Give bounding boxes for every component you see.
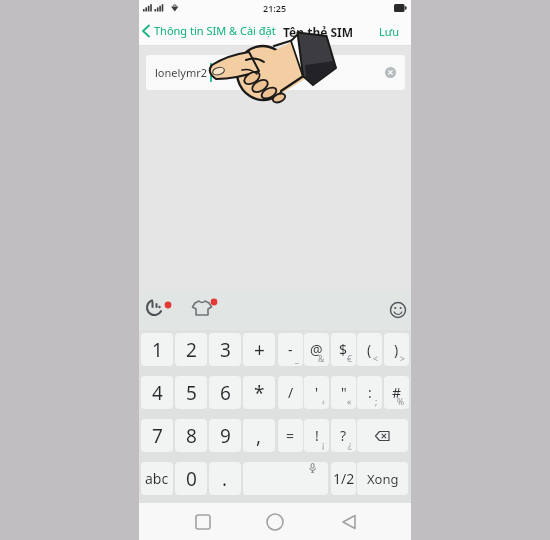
staticText: Lưu: [379, 24, 399, 39]
button[interactable]: ": [331, 376, 356, 409]
staticText: 1/2: [333, 469, 355, 488]
staticText: &: [318, 353, 325, 365]
staticText: 8: [186, 423, 197, 449]
button[interactable]: 3: [209, 333, 241, 366]
staticText: 3: [220, 337, 231, 363]
staticText: -: [288, 340, 293, 359]
button[interactable]: [187, 506, 219, 538]
button[interactable]: .: [209, 462, 241, 495]
staticText: !: [315, 426, 319, 445]
staticText: ¿: [348, 439, 352, 451]
staticText: 21:25: [263, 2, 287, 14]
staticText: 7: [152, 423, 163, 449]
button[interactable]: ,: [243, 419, 275, 452]
button[interactable]: @: [304, 333, 329, 366]
staticText: _: [295, 353, 299, 365]
staticText: <: [373, 353, 378, 365]
button[interactable]: =: [278, 419, 303, 452]
button[interactable]: #: [384, 376, 409, 409]
staticText: :: [368, 383, 372, 402]
staticText: Thông tin SIM & Cài đặt: [154, 23, 276, 38]
button[interactable]: ?: [331, 419, 356, 452]
staticText: +: [254, 337, 265, 363]
button[interactable]: :: [357, 376, 382, 409]
button[interactable]: Lưu: [373, 20, 405, 42]
button[interactable]: *: [243, 376, 275, 409]
staticText: ): [394, 340, 399, 359]
button[interactable]: 2: [175, 333, 207, 366]
button[interactable]: 9: [209, 419, 241, 452]
button[interactable]: 1: [141, 333, 173, 366]
staticText: 2: [186, 337, 197, 363]
button[interactable]: 0: [175, 462, 207, 495]
staticText: lonelymr2: [155, 65, 208, 80]
staticText: 5: [186, 380, 197, 406]
staticText: #: [392, 383, 402, 402]
staticText: Tên thẻ SIM: [283, 24, 354, 40]
staticText: 0: [186, 466, 197, 492]
button[interactable]: 8: [175, 419, 207, 452]
button[interactable]: [259, 506, 291, 538]
button[interactable]: 7: [141, 419, 173, 452]
staticText: ': [315, 383, 319, 402]
staticText: 9: [220, 423, 231, 449]
staticText: Xong: [367, 470, 399, 488]
staticText: 4: [152, 380, 163, 406]
staticText: *: [254, 380, 265, 406]
staticText: abc: [145, 469, 169, 488]
staticText: @: [310, 340, 323, 359]
staticText: «: [347, 396, 352, 408]
button[interactable]: (: [357, 333, 382, 366]
staticText: /: [288, 383, 294, 402]
button[interactable]: Thông tin SIM & Cài đặt: [141, 18, 275, 43]
button[interactable]: 4: [141, 376, 173, 409]
button[interactable]: lonelymr2: [146, 55, 405, 90]
button[interactable]: ): [384, 333, 409, 366]
staticText: .: [222, 466, 228, 492]
staticText: ": [341, 383, 347, 402]
button[interactable]: $: [331, 333, 356, 366]
button[interactable]: 5: [175, 376, 207, 409]
button[interactable]: [333, 506, 365, 538]
button[interactable]: ': [304, 376, 329, 409]
button[interactable]: /: [278, 376, 303, 409]
staticText: ‹: [322, 396, 325, 408]
staticText: $: [339, 340, 348, 359]
button[interactable]: Xong: [357, 462, 408, 495]
staticText: €: [347, 353, 352, 365]
staticText: =: [286, 426, 295, 445]
button[interactable]: [189, 295, 221, 325]
staticText: 6: [220, 380, 231, 406]
button[interactable]: -: [278, 333, 303, 366]
staticText: >: [400, 353, 405, 365]
staticText: (: [367, 340, 372, 359]
button[interactable]: [385, 295, 411, 325]
staticText: %: [397, 396, 405, 408]
button[interactable]: abc: [141, 462, 173, 495]
staticText: ;: [375, 396, 378, 408]
staticText: ?: [340, 426, 347, 445]
button[interactable]: 1/2: [331, 462, 356, 495]
button[interactable]: [143, 295, 175, 325]
staticText: ,: [256, 423, 262, 449]
button[interactable]: [357, 419, 408, 452]
staticText: 1: [152, 337, 163, 363]
button[interactable]: !: [304, 419, 329, 452]
staticText: ¡: [322, 439, 325, 451]
button[interactable]: 6: [209, 376, 241, 409]
button[interactable]: [243, 462, 328, 495]
button[interactable]: +: [243, 333, 275, 366]
